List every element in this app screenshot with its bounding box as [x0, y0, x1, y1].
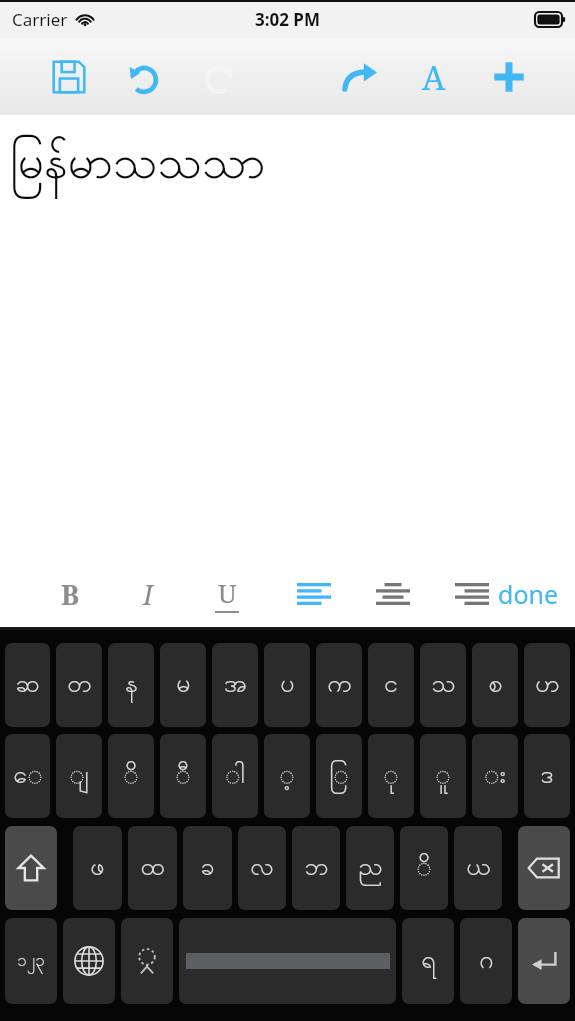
- button[interactable]: I: [122, 568, 174, 620]
- staticText: မ: [176, 667, 191, 704]
- button[interactable]: Shift: [5, 826, 57, 910]
- staticText: ိ: [416, 850, 432, 887]
- button[interactable]: င: [368, 643, 414, 727]
- button[interactable]: ဆ: [5, 643, 50, 727]
- staticText: ၁၂၃: [17, 949, 45, 974]
- button[interactable]: done: [490, 568, 566, 620]
- button[interactable]: Symbols: [121, 918, 173, 1004]
- button[interactable]: Share: [333, 50, 387, 104]
- button[interactable]: U: [201, 568, 253, 620]
- button[interactable]: Align left: [288, 568, 340, 620]
- button[interactable]: Align right: [446, 568, 498, 620]
- button[interactable]: ု: [368, 734, 414, 818]
- staticText: ပ: [280, 667, 295, 704]
- staticText: ီ: [175, 758, 191, 795]
- staticText: ဂ: [479, 943, 494, 980]
- staticText: ူ: [435, 758, 451, 795]
- button[interactable]: လ: [238, 826, 286, 910]
- staticText: က: [327, 667, 352, 704]
- staticText: done: [498, 577, 559, 611]
- staticText: ဘ: [304, 850, 329, 887]
- button[interactable]: ့: [264, 734, 310, 818]
- button[interactable]: ထ: [128, 826, 177, 910]
- staticText: င: [384, 667, 398, 704]
- button[interactable]: ီ: [160, 734, 206, 818]
- staticText: ခ: [200, 850, 215, 887]
- staticText: ု: [383, 758, 399, 795]
- button[interactable]: ၁၂၃: [5, 918, 57, 1004]
- staticText: သ: [431, 667, 456, 704]
- button[interactable]: B: [44, 568, 96, 620]
- staticText: U: [218, 575, 237, 610]
- button[interactable]: ပ: [264, 643, 310, 727]
- staticText: လ: [250, 850, 274, 887]
- staticText: ေ: [13, 758, 43, 795]
- staticText: ျ: [69, 758, 89, 795]
- button[interactable]: ခ: [183, 826, 232, 910]
- staticText: ထ: [140, 850, 165, 887]
- staticText: ့: [279, 758, 295, 795]
- button[interactable]: တ: [56, 643, 102, 727]
- button[interactable]: Align center: [367, 568, 419, 620]
- button[interactable]: အ: [212, 643, 258, 727]
- button[interactable]: Save: [42, 50, 96, 104]
- button[interactable]: Font: [407, 50, 461, 104]
- button[interactable]: စ: [472, 643, 518, 727]
- button[interactable]: ယ: [454, 826, 502, 910]
- button[interactable]: ည: [346, 826, 394, 910]
- staticText: း: [484, 758, 506, 795]
- staticText: စ: [488, 667, 503, 704]
- staticText: ဖ: [90, 850, 105, 887]
- staticText: ည: [358, 850, 383, 887]
- button[interactable]: း: [472, 734, 518, 818]
- button[interactable]: ဟ: [524, 643, 570, 727]
- button[interactable]: Undo: [117, 50, 171, 104]
- button[interactable]: Space: [179, 918, 396, 1004]
- button[interactable]: ရ: [402, 918, 454, 1004]
- staticText: 3:02 PM: [255, 8, 320, 31]
- staticText: ရ: [421, 943, 436, 980]
- button[interactable]: န: [108, 643, 154, 727]
- staticText: တ: [67, 667, 92, 704]
- staticText: မြန်မာသသသာ: [10, 133, 266, 201]
- staticText: ဟ: [535, 667, 560, 704]
- button[interactable]: ဒ: [524, 734, 570, 818]
- button[interactable]: Redo: [192, 50, 246, 104]
- staticText: A: [422, 55, 446, 100]
- staticText: ယ: [466, 850, 491, 887]
- button[interactable]: ျ: [56, 734, 102, 818]
- staticText: B: [61, 576, 80, 613]
- staticText: ိ: [123, 758, 139, 795]
- button[interactable]: Return: [518, 918, 570, 1004]
- staticText: ဒ: [540, 758, 554, 795]
- button[interactable]: သ: [420, 643, 466, 727]
- button[interactable]: ဘ: [292, 826, 340, 910]
- staticText: န: [125, 667, 138, 704]
- staticText: I: [143, 576, 153, 613]
- staticText: ြ: [329, 758, 349, 795]
- button[interactable]: က: [316, 643, 362, 727]
- button[interactable]: ဂ: [460, 918, 512, 1004]
- staticText: ဆ: [15, 667, 40, 704]
- button[interactable]: ိ: [108, 734, 154, 818]
- staticText: ါ: [225, 758, 245, 795]
- staticText: အ: [224, 667, 247, 704]
- button[interactable]: ေ: [5, 734, 50, 818]
- button[interactable]: မ: [160, 643, 206, 727]
- button[interactable]: ိ: [400, 826, 448, 910]
- button[interactable]: Add: [482, 50, 536, 104]
- button[interactable]: ါ: [212, 734, 258, 818]
- button[interactable]: ြ: [316, 734, 362, 818]
- staticText: Carrier: [12, 8, 68, 31]
- button[interactable]: Backspace: [518, 826, 570, 910]
- button[interactable]: ဖ: [73, 826, 122, 910]
- button[interactable]: Next keyboard: [63, 918, 115, 1004]
- button[interactable]: ူ: [420, 734, 466, 818]
